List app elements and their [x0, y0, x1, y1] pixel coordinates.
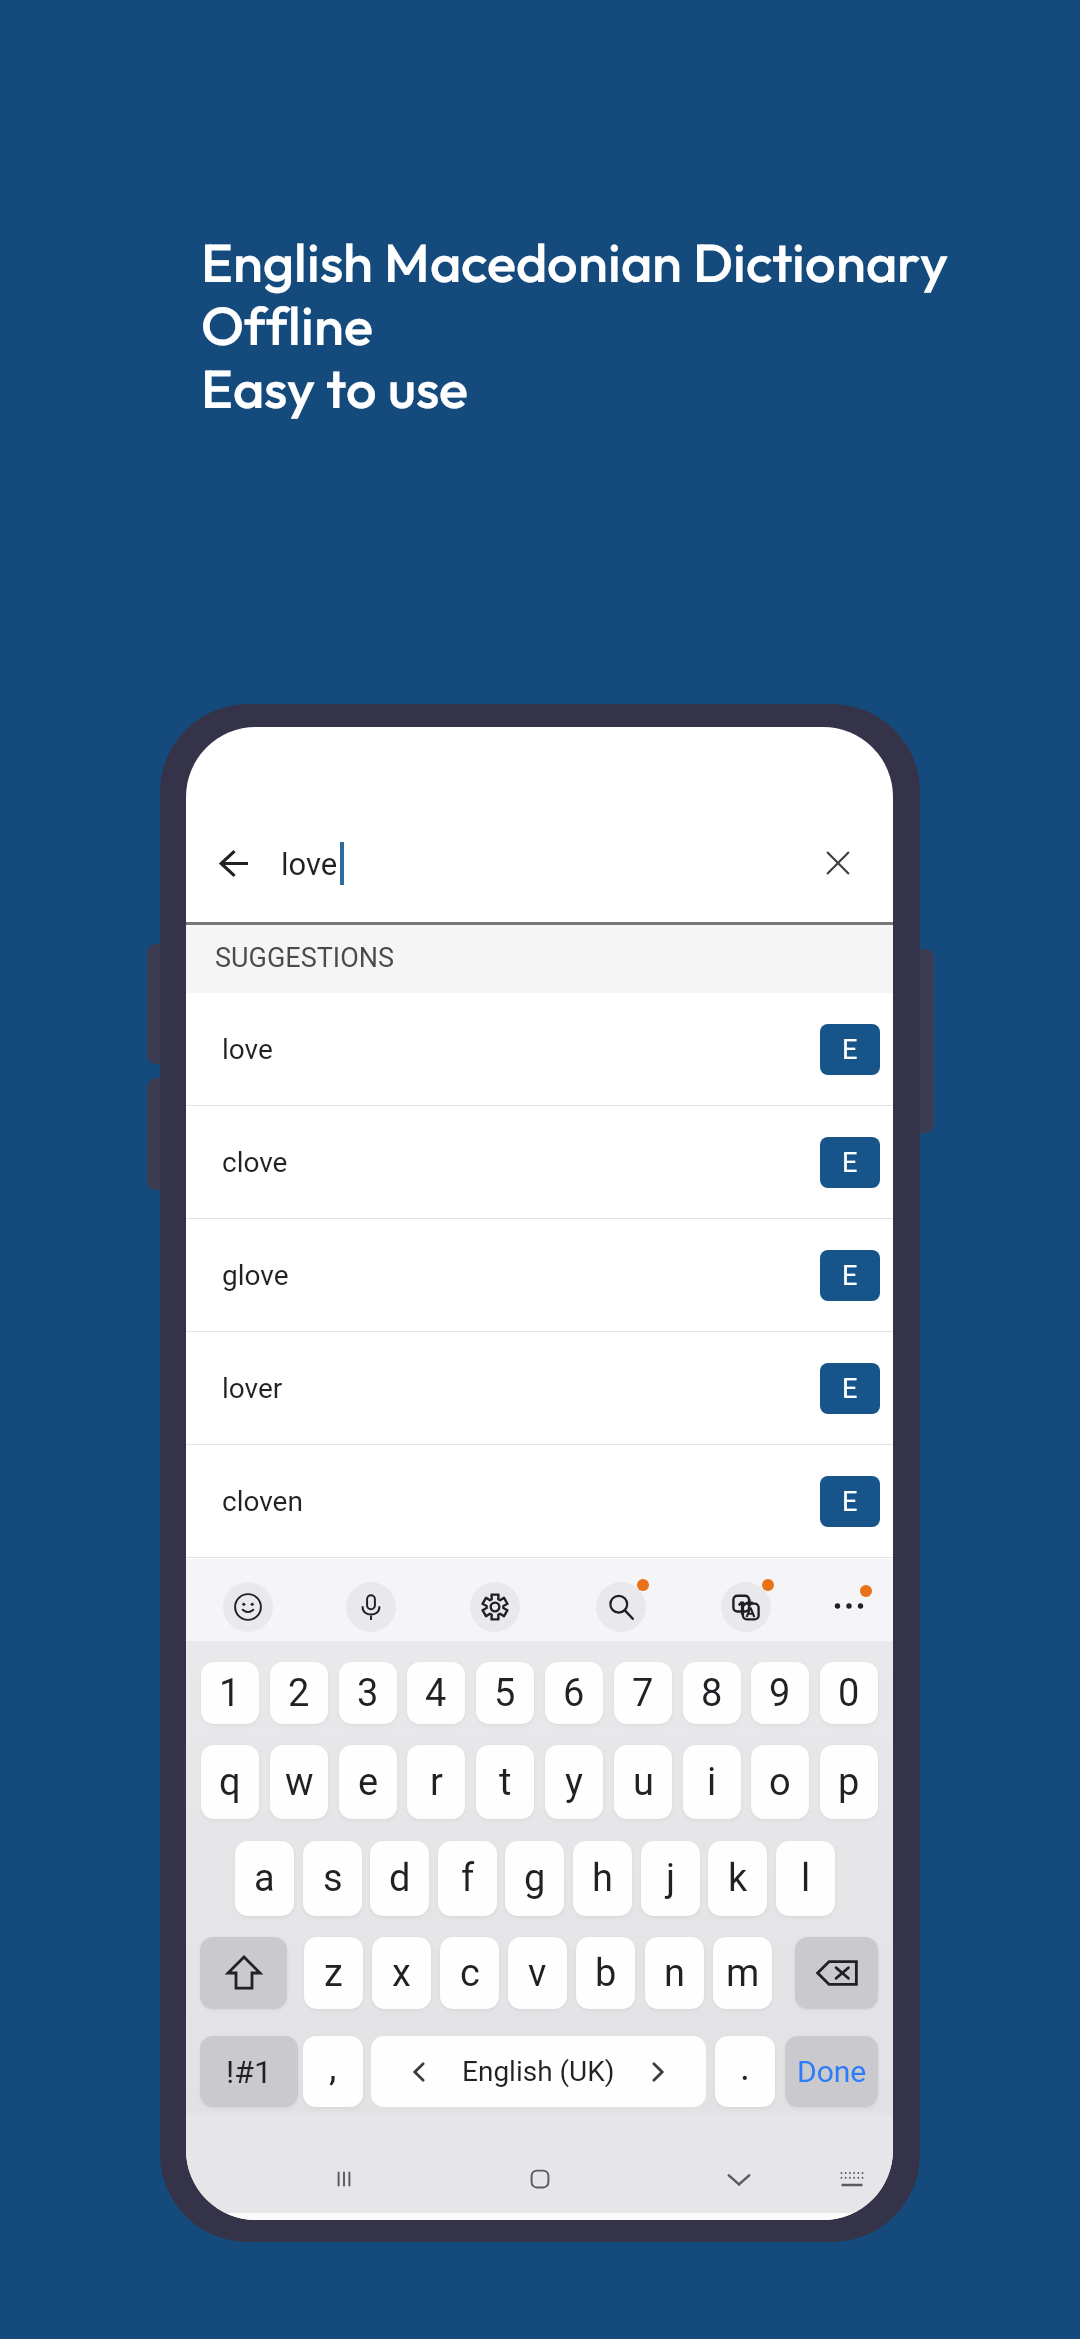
staticText: v	[528, 1951, 547, 1996]
button[interactable]: Keyboard settings	[464, 1576, 526, 1638]
staticText: E	[842, 1486, 858, 1518]
staticText: 8	[701, 1671, 723, 1716]
staticText: o	[769, 1760, 791, 1805]
staticText: 2	[288, 1671, 310, 1716]
button[interactable]: Recent apps	[316, 2151, 372, 2207]
staticText: 7	[632, 1671, 654, 1716]
staticText: E	[842, 1373, 858, 1405]
button[interactable]: w	[270, 1745, 328, 1819]
staticText: g	[524, 1856, 546, 1901]
button[interactable]: ,	[303, 2036, 363, 2107]
button[interactable]: f	[438, 1841, 497, 1916]
button[interactable]: c	[440, 1937, 499, 2009]
button[interactable]: Backspace	[795, 1937, 878, 2009]
button[interactable]: Clear search	[810, 835, 866, 891]
button[interactable]: 8	[683, 1662, 741, 1724]
staticText: u	[633, 1760, 654, 1805]
button[interactable]: More options	[818, 1575, 880, 1637]
button[interactable]: 5	[476, 1662, 534, 1724]
button[interactable]: t	[476, 1745, 534, 1819]
button[interactable]: q	[201, 1745, 259, 1819]
button[interactable]: 1	[201, 1662, 259, 1724]
button[interactable]: love	[186, 993, 893, 1106]
staticText: a	[254, 1856, 275, 1901]
staticText: E	[842, 1260, 858, 1292]
button[interactable]: m	[713, 1937, 772, 2009]
button[interactable]: j	[641, 1841, 700, 1916]
staticText: b	[595, 1951, 617, 1996]
button[interactable]: Shift	[200, 1937, 287, 2009]
staticText: r	[430, 1760, 443, 1805]
button[interactable]: x	[372, 1937, 431, 2009]
staticText: 9	[769, 1671, 791, 1716]
button[interactable]: b	[576, 1937, 635, 2009]
button[interactable]: e	[339, 1745, 397, 1819]
button[interactable]: English (UK)	[371, 2036, 706, 2107]
button[interactable]: 0	[820, 1662, 878, 1724]
button[interactable]: a	[235, 1841, 294, 1916]
button[interactable]: 6	[545, 1662, 603, 1724]
staticText: E	[842, 1147, 858, 1179]
button[interactable]: k	[708, 1841, 767, 1916]
button[interactable]: glove	[186, 1219, 893, 1332]
button[interactable]: v	[508, 1937, 567, 2009]
staticText: cloven	[222, 1485, 303, 1518]
button[interactable]: clove	[186, 1106, 893, 1219]
staticText: d	[389, 1856, 411, 1901]
button[interactable]: Emoji	[217, 1576, 279, 1638]
staticText: x	[392, 1951, 411, 1996]
button[interactable]: Voice input	[340, 1576, 402, 1638]
button[interactable]: Home	[512, 2151, 568, 2207]
button[interactable]: y	[545, 1745, 603, 1819]
button[interactable]: g	[505, 1841, 564, 1916]
staticText: y	[565, 1760, 583, 1805]
button[interactable]: l	[776, 1841, 835, 1916]
staticText: i	[707, 1760, 717, 1805]
staticText: 5	[494, 1671, 516, 1716]
button[interactable]: 4	[407, 1662, 465, 1724]
button[interactable]: Hide keyboard	[711, 2151, 767, 2207]
staticText: love	[222, 1033, 273, 1066]
button[interactable]: Done	[785, 2036, 878, 2107]
staticText: English (UK)	[462, 2055, 615, 2088]
button[interactable]: o	[751, 1745, 809, 1819]
staticText: 0	[838, 1671, 860, 1716]
staticText: j	[666, 1856, 676, 1901]
staticText: n	[664, 1951, 685, 1996]
button[interactable]: i	[683, 1745, 741, 1819]
staticText: glove	[222, 1259, 289, 1292]
button[interactable]: 9	[751, 1662, 809, 1724]
button[interactable]: Back	[206, 835, 262, 891]
staticText: lover	[222, 1372, 283, 1405]
button[interactable]: 7	[614, 1662, 672, 1724]
staticText: c	[460, 1951, 480, 1996]
button[interactable]: n	[645, 1937, 704, 2009]
button[interactable]: Search	[590, 1576, 652, 1638]
button[interactable]: 2	[270, 1662, 328, 1724]
button[interactable]: lover	[186, 1332, 893, 1445]
staticText: h	[592, 1856, 613, 1901]
button[interactable]: h	[573, 1841, 632, 1916]
staticText: s	[323, 1856, 343, 1901]
staticText: 1	[219, 1671, 241, 1716]
button[interactable]: Keyboard layout	[824, 2151, 880, 2207]
button[interactable]: !#1	[200, 2036, 298, 2107]
staticText: clove	[222, 1146, 288, 1179]
button[interactable]: cloven	[186, 1445, 893, 1558]
staticText: !#1	[226, 2053, 272, 2091]
button[interactable]: d	[370, 1841, 429, 1916]
button[interactable]: z	[304, 1937, 363, 2009]
staticText: .	[740, 2045, 751, 2090]
button[interactable]: s	[303, 1841, 362, 1916]
button[interactable]: r	[407, 1745, 465, 1819]
staticText: ,	[329, 2045, 337, 2090]
staticText: e	[358, 1760, 379, 1805]
staticText: f	[461, 1856, 475, 1901]
staticText: z	[324, 1951, 343, 1996]
staticText: k	[728, 1856, 748, 1901]
button[interactable]: 3	[339, 1662, 397, 1724]
button[interactable]: u	[614, 1745, 672, 1819]
button[interactable]: Translate	[715, 1576, 777, 1638]
button[interactable]: .	[715, 2036, 775, 2107]
button[interactable]: p	[820, 1745, 878, 1819]
